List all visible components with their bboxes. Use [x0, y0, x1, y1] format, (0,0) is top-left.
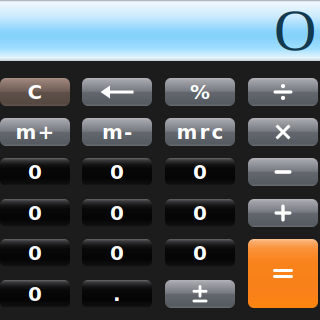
staticText: C — [27, 80, 42, 104]
staticText: 0 — [193, 160, 207, 184]
staticText: mrc — [176, 120, 223, 144]
staticText: 0 — [110, 241, 124, 265]
button[interactable]: m+ — [0, 118, 70, 146]
button[interactable]: 0 — [165, 239, 235, 267]
staticText: 0 — [193, 201, 207, 225]
staticText: % — [190, 80, 210, 104]
button[interactable]: 0 — [0, 239, 70, 267]
button[interactable]: 0 — [0, 158, 70, 186]
button[interactable]: 0 — [82, 158, 152, 186]
button[interactable]: mrc — [165, 118, 235, 146]
button[interactable]: Minus — [248, 158, 318, 186]
staticText: 0 — [110, 160, 124, 184]
button[interactable]: 0 — [165, 158, 235, 186]
button[interactable]: Backspace — [82, 78, 152, 106]
staticText: 0 — [28, 282, 42, 306]
staticText: 0 — [28, 201, 42, 225]
button[interactable]: m- — [82, 118, 152, 146]
button[interactable]: Divide — [248, 78, 318, 106]
staticText: 0 — [110, 201, 124, 225]
staticText: m- — [102, 120, 132, 144]
button[interactable]: Plus — [248, 199, 318, 227]
staticText: O — [274, 0, 316, 63]
staticText: 0 — [193, 241, 207, 265]
staticText: 0 — [28, 241, 42, 265]
button[interactable]: Equals — [248, 239, 318, 308]
button[interactable]: 0 — [0, 199, 70, 227]
button[interactable]: Plus or minus — [165, 280, 235, 308]
staticText: 0 — [28, 160, 42, 184]
button[interactable]: 0 — [82, 239, 152, 267]
button[interactable]: 0 — [165, 199, 235, 227]
button[interactable]: Multiply — [248, 118, 318, 146]
button[interactable]: 0 — [0, 280, 70, 308]
button[interactable]: . — [82, 280, 152, 308]
button[interactable]: C — [0, 78, 70, 106]
staticText: m+ — [15, 120, 54, 144]
staticText: . — [113, 282, 121, 306]
button[interactable]: 0 — [82, 199, 152, 227]
button[interactable]: % — [165, 78, 235, 106]
